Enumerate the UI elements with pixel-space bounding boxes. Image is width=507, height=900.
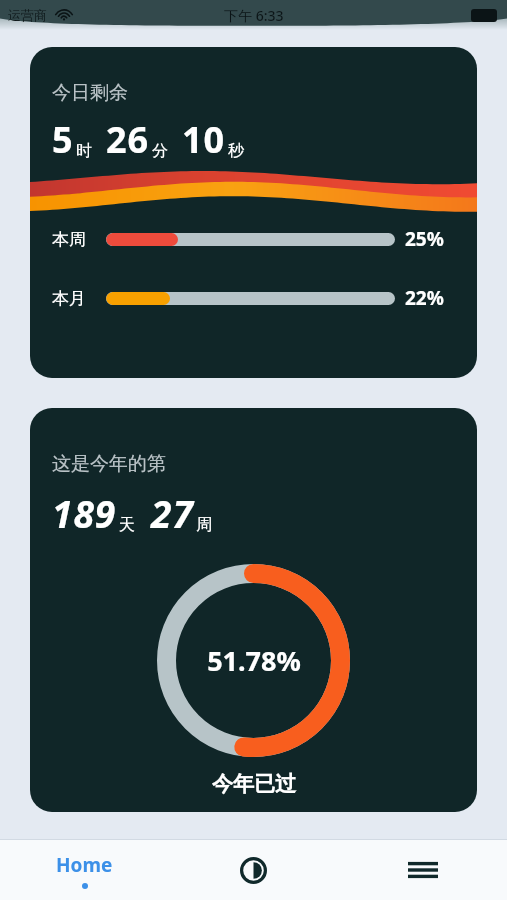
staticText: 本月 <box>52 288 106 309</box>
staticText: 10 <box>182 115 226 164</box>
staticText: 今年已过 <box>212 771 296 797</box>
staticText: 时 <box>76 141 92 161</box>
button[interactable]: Timer <box>169 840 338 900</box>
staticText: 下午 6:33 <box>224 6 284 25</box>
staticText: 27 <box>151 488 194 538</box>
staticText: 26 <box>106 115 150 164</box>
staticText: 秒 <box>228 141 244 161</box>
staticText: 运营商 <box>8 7 47 23</box>
staticText: Home <box>56 852 113 878</box>
staticText: 这是今年的第 <box>52 452 166 476</box>
staticText: 天 <box>119 515 135 535</box>
staticText: 189 <box>52 488 117 538</box>
staticText: 22% <box>405 285 455 311</box>
button[interactable]: 这是今年的第 <box>30 408 477 812</box>
staticText: 今日剩余 <box>52 81 128 105</box>
staticText: 5 <box>52 115 74 164</box>
staticText: 分 <box>152 141 168 161</box>
staticText: 周 <box>196 515 212 535</box>
staticText: 25% <box>405 226 455 252</box>
button[interactable]: 今日剩余 <box>30 47 477 378</box>
staticText: 51.78% <box>207 642 301 679</box>
button[interactable]: Menu <box>338 840 507 900</box>
staticText: 本周 <box>52 229 106 250</box>
button[interactable]: Home <box>0 840 169 900</box>
